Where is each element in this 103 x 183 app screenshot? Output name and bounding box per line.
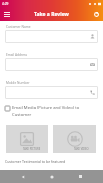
button[interactable]: Home [45, 170, 58, 183]
staticText: Email Media (Picture and Video) to Custo… [12, 105, 81, 117]
button[interactable]: Refresh [92, 10, 101, 19]
staticText: TAKE PICTURE [23, 147, 41, 151]
button[interactable]: TAKE PICTURE [6, 125, 48, 153]
button[interactable] [5, 30, 98, 43]
button[interactable] [5, 86, 98, 99]
button[interactable]: Email Media (Picture and Video) to Custo… [5, 105, 81, 117]
button[interactable]: TAKE VIDEO [53, 125, 96, 153]
staticText: TAKE VIDEO [74, 147, 89, 151]
button[interactable] [5, 58, 98, 71]
staticText: Take a Review [34, 11, 69, 18]
button[interactable]: Recent apps [74, 170, 87, 183]
staticText: Email Address [6, 53, 28, 57]
staticText: 4:29 [2, 2, 9, 6]
button[interactable]: Open navigation menu [2, 10, 11, 19]
staticText: Mobile Number [6, 81, 30, 85]
staticText: Customer Testimonial to be featured [5, 159, 66, 164]
button[interactable]: Back [16, 170, 29, 183]
staticText: Customer Name [6, 25, 31, 29]
